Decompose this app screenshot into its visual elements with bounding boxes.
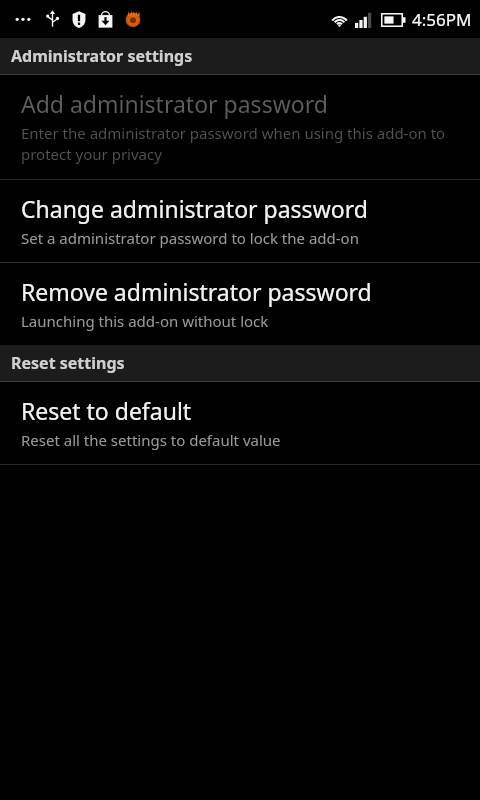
staticText: Add administrator password	[21, 88, 328, 119]
staticText: Change administrator password	[21, 193, 368, 224]
staticText: Reset settings	[11, 352, 125, 374]
staticText: Set a administrator password to lock the…	[21, 228, 359, 248]
button[interactable]: Remove administrator password	[0, 263, 480, 345]
button[interactable]: Change administrator password	[0, 180, 480, 262]
staticText: Reset all the settings to default value	[21, 430, 281, 450]
staticText: 4:56PM	[412, 8, 472, 31]
button[interactable]: Reset to default	[0, 382, 480, 464]
staticText: Administrator settings	[11, 45, 193, 67]
staticText: Reset to default	[21, 395, 192, 426]
staticText: Launching this add-on without lock	[21, 311, 269, 331]
staticText: Remove administrator password	[21, 276, 372, 307]
staticText: Enter the administrator password when us…	[21, 123, 460, 165]
button[interactable]: Add administrator password	[0, 75, 480, 179]
